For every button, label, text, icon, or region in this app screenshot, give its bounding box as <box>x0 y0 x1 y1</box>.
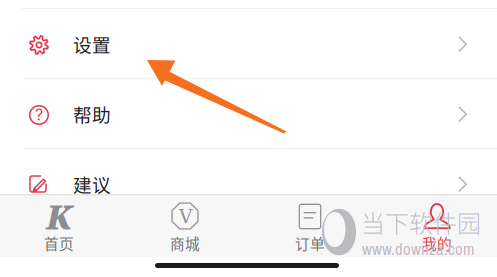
staticText: 当下软件园 <box>361 205 481 239</box>
staticText: 订单 <box>295 232 325 254</box>
staticText: www.downza.com <box>362 238 474 260</box>
button[interactable]: K <box>0 195 497 257</box>
staticText: 商城 <box>170 232 200 254</box>
button[interactable]: V <box>0 195 497 257</box>
button[interactable]: 建议 <box>0 149 497 219</box>
staticText: 帮助 <box>73 100 111 127</box>
button[interactable]: ? <box>0 79 497 149</box>
staticText: 我的 <box>422 232 452 254</box>
button[interactable]: 我的 <box>0 195 497 257</box>
staticText: 首页 <box>44 232 74 254</box>
staticText: ? <box>35 105 43 124</box>
button[interactable]: 设置 <box>0 9 497 79</box>
staticText: 建议 <box>73 170 111 197</box>
staticText: K <box>46 194 72 239</box>
button[interactable]: 订单 <box>0 195 497 257</box>
staticText: V <box>179 206 192 227</box>
staticText: 设置 <box>73 30 111 57</box>
